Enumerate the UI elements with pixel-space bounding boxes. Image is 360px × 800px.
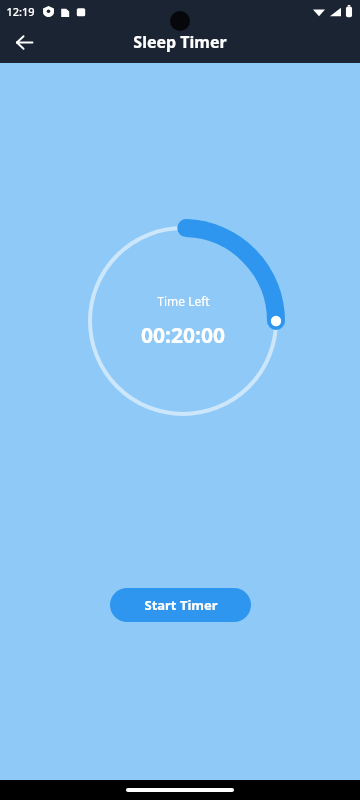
staticText: Sleep Timer xyxy=(133,31,227,53)
staticText: 12:19 xyxy=(6,4,35,19)
staticText: 00:20:00 xyxy=(141,321,225,350)
button[interactable]: Start Timer xyxy=(110,588,251,622)
staticText: Start Timer xyxy=(144,596,218,614)
button[interactable]: Back xyxy=(9,27,39,57)
staticText: Time Left xyxy=(157,293,210,309)
